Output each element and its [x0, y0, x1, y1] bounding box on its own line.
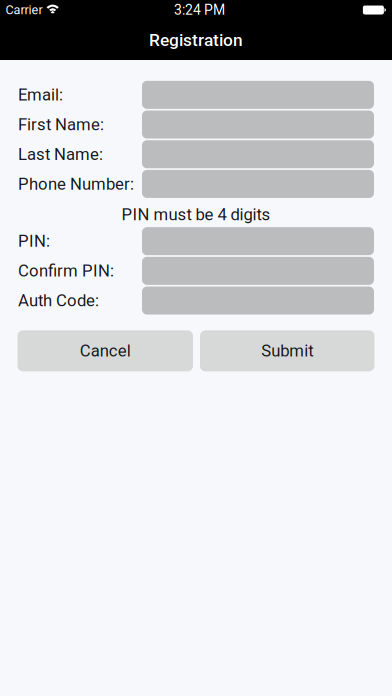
staticText: Submit — [261, 341, 313, 361]
button[interactable]: Submit — [200, 330, 374, 371]
staticText: 3:24 PM — [174, 2, 225, 18]
button[interactable]: Cancel — [17, 330, 193, 371]
staticText: Carrier — [5, 3, 42, 17]
staticText: Auth Code: — [18, 291, 99, 310]
button[interactable]: First Name: — [18, 110, 374, 139]
staticText: Email: — [18, 85, 63, 105]
button[interactable]: Phone Number: — [18, 169, 374, 199]
button[interactable]: Email: — [18, 80, 374, 110]
button[interactable]: PIN: — [18, 226, 374, 256]
staticText: PIN: — [18, 231, 50, 251]
staticText: Last Name: — [18, 144, 103, 164]
staticText: Phone Number: — [18, 174, 134, 194]
staticText: First Name: — [18, 115, 104, 134]
staticText: PIN must be 4 digits — [121, 205, 270, 224]
staticText: Registration — [149, 30, 243, 50]
staticText: Cancel — [80, 341, 131, 361]
staticText: Confirm PIN: — [18, 261, 114, 281]
button[interactable]: Last Name: — [18, 139, 374, 169]
button[interactable]: Auth Code: — [18, 286, 374, 315]
button[interactable]: Confirm PIN: — [18, 256, 374, 286]
